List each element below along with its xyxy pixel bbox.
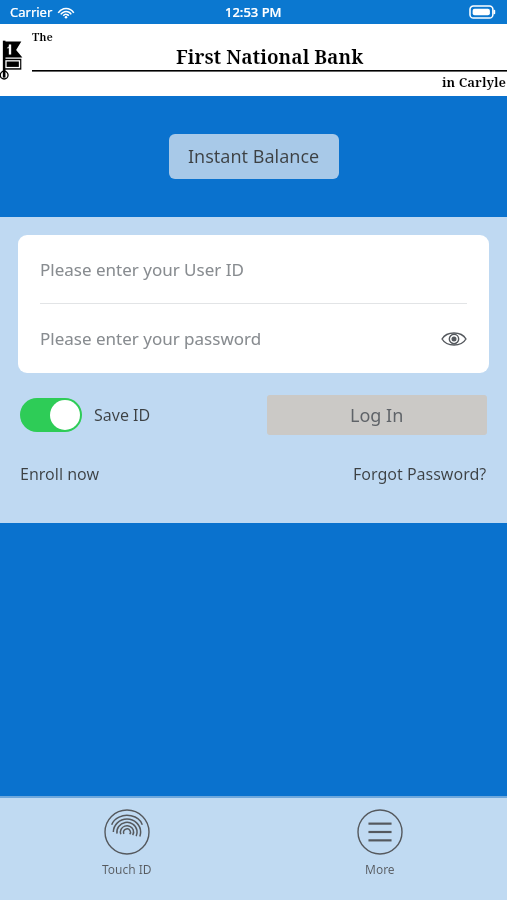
staticText: Save ID [94, 404, 151, 426]
staticText: Carrier [10, 3, 53, 21]
button[interactable]: Instant Balance [169, 134, 339, 179]
staticText: More [365, 861, 395, 877]
button[interactable]: Log In [267, 395, 487, 435]
button[interactable]: Forgot Password? [353, 463, 487, 485]
staticText: Please enter your password [40, 327, 262, 350]
staticText: Touch ID [102, 861, 152, 877]
staticText: Please enter your User ID [40, 258, 244, 281]
button[interactable]: Save ID [20, 398, 151, 432]
staticText: Log In [350, 403, 404, 428]
staticText: Forgot Password? [353, 463, 487, 485]
button[interactable]: More [348, 798, 412, 881]
button[interactable]: Show password [437, 322, 471, 356]
staticText: 12:53 PM [225, 3, 282, 21]
button[interactable]: Please enter your password [18, 304, 489, 373]
staticText: Instant Balance [188, 144, 320, 169]
staticText: First National Bank [176, 44, 364, 70]
staticText: in Carlyle [442, 73, 507, 91]
button[interactable]: Please enter your User ID [18, 235, 489, 303]
button[interactable]: Touch ID [94, 798, 160, 881]
staticText: The [32, 29, 53, 44]
button[interactable]: Enroll now [20, 463, 99, 485]
staticText: Enroll now [20, 463, 99, 485]
